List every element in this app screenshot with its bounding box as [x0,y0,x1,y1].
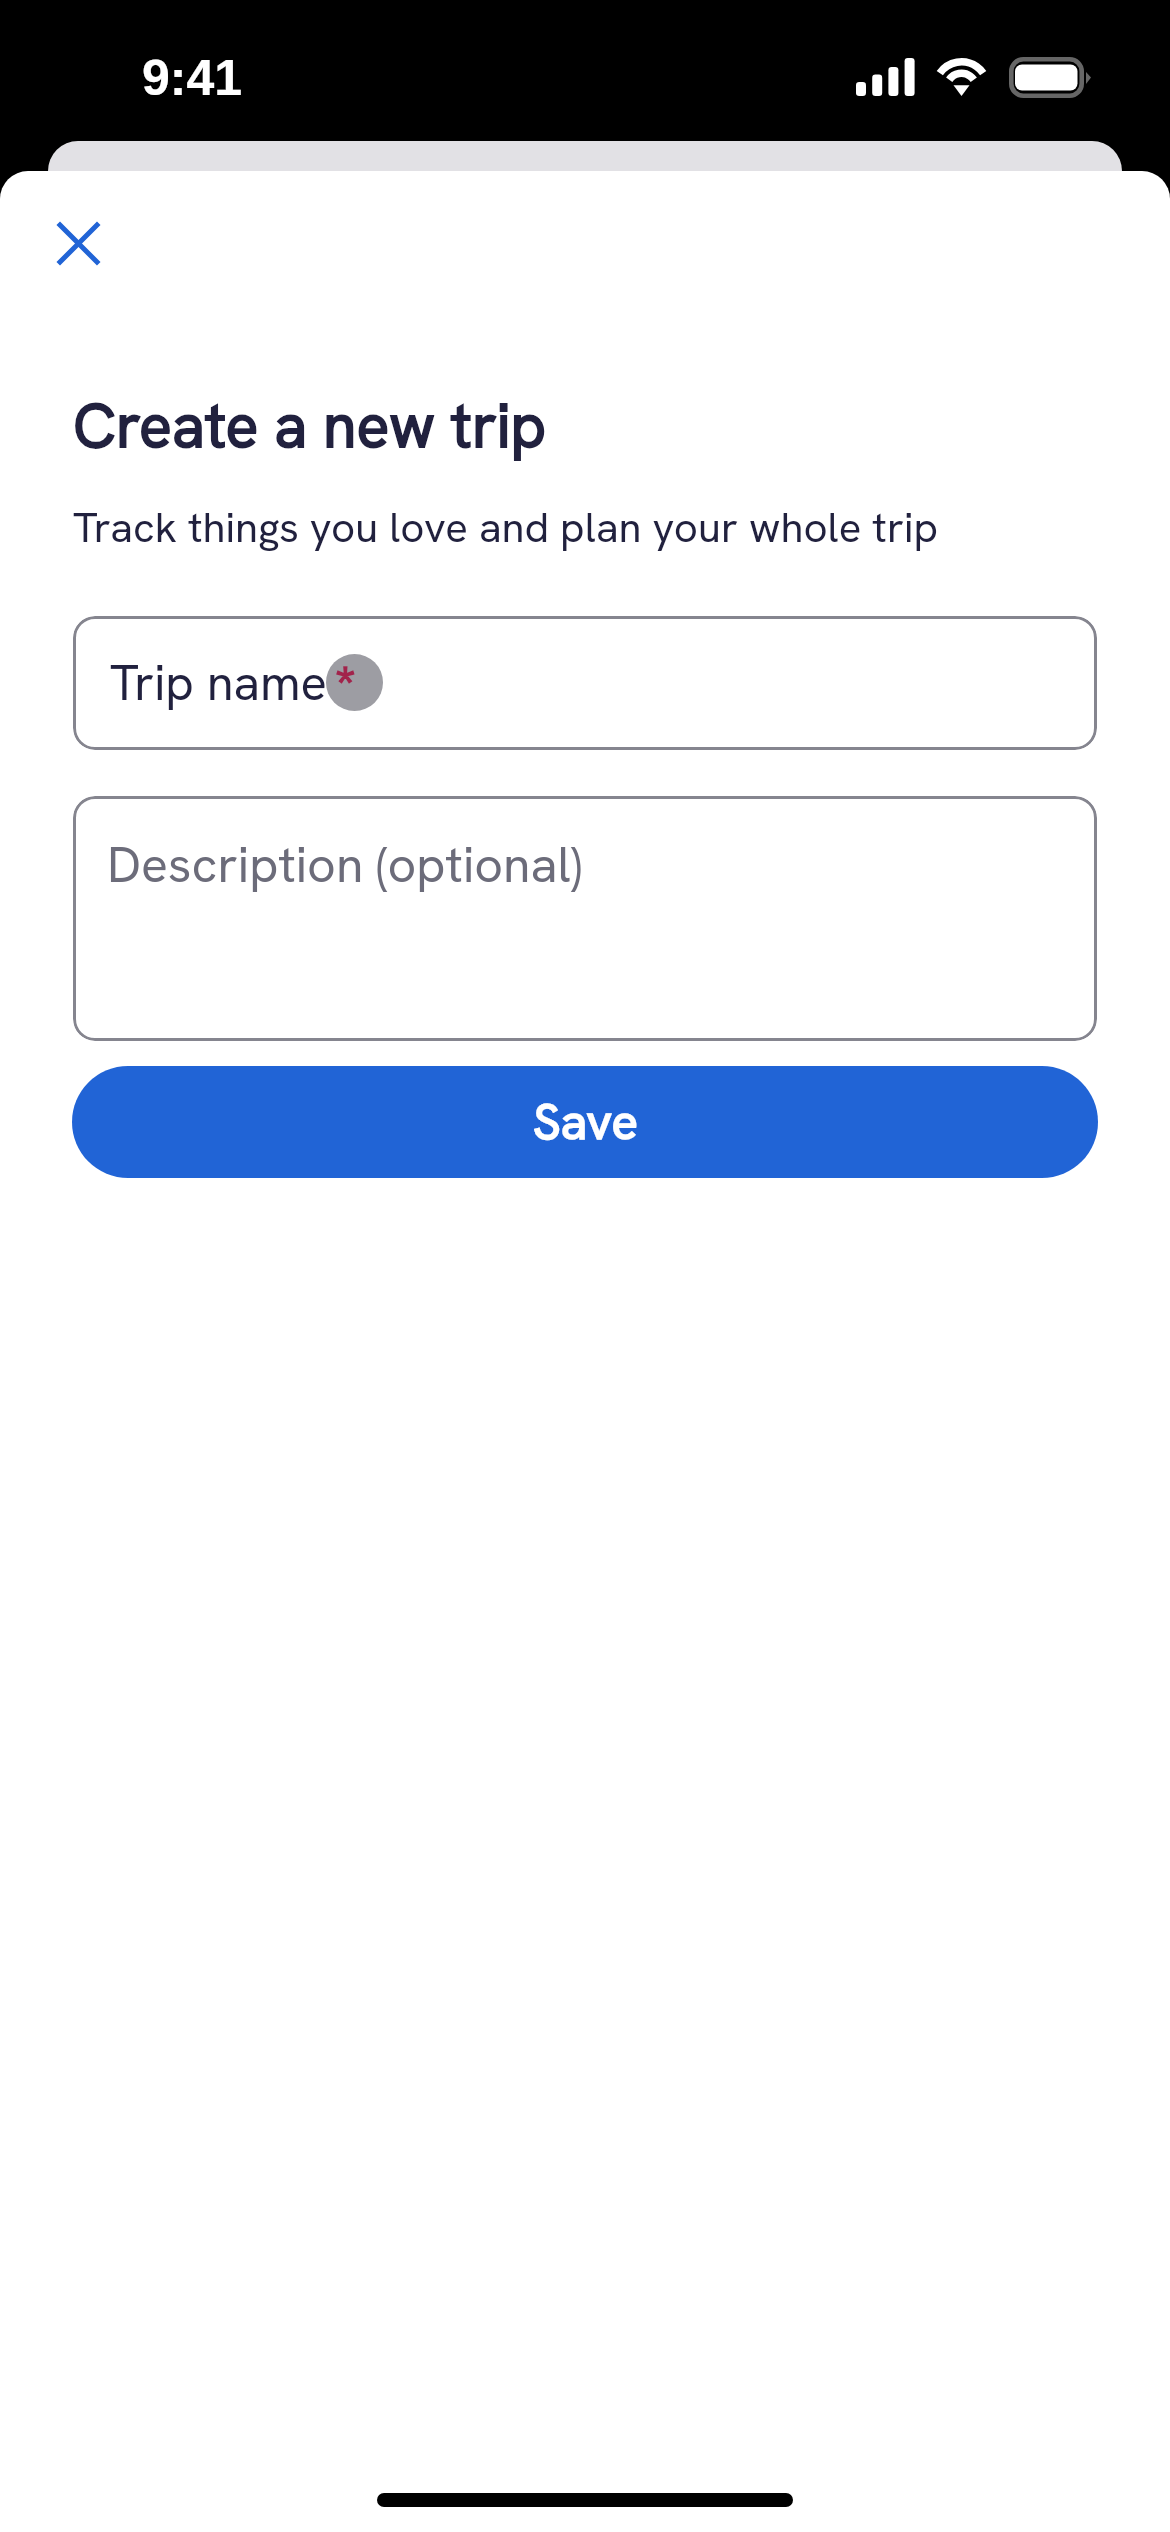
staticText: Description (optional) [107,832,582,897]
staticText: Save [533,1090,638,1154]
button[interactable]: Save [72,1066,1098,1178]
button[interactable]: Trip name [73,616,1097,750]
staticText: Trip name [110,651,328,715]
staticText: * [335,654,356,708]
button[interactable]: Description (optional) [73,796,1097,1041]
staticText: 9:41 [142,50,243,106]
staticText: Track things you love and plan your whol… [73,500,939,555]
button[interactable]: Close [38,203,118,283]
staticText: Create a new trip [73,386,547,465]
